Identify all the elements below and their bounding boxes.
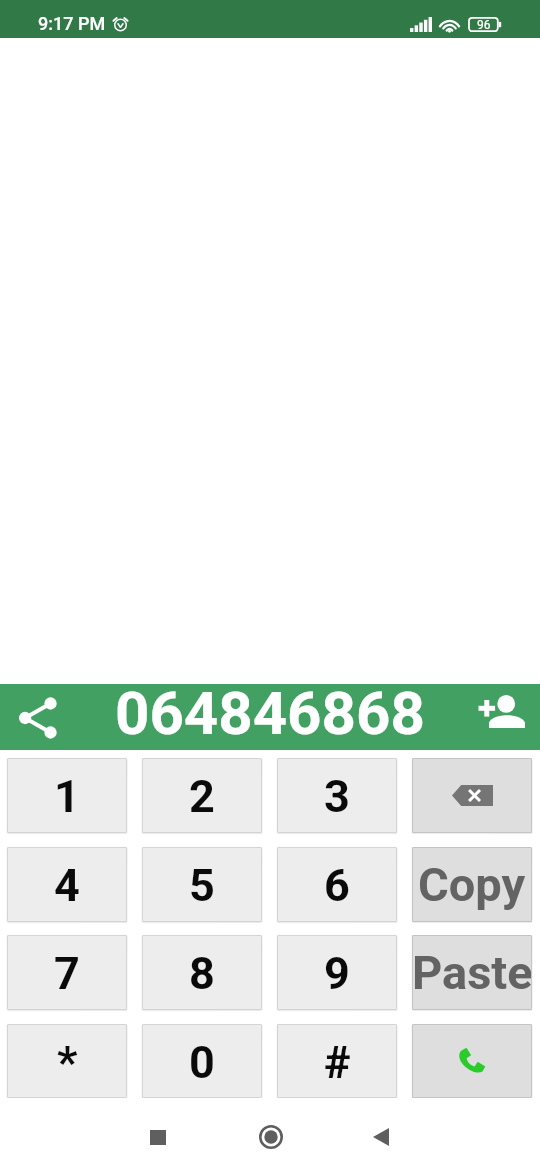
staticText: Paste xyxy=(412,945,532,1000)
staticText: 0 xyxy=(189,1036,215,1089)
button[interactable]: 6 xyxy=(277,847,397,922)
staticText: # xyxy=(324,1036,351,1089)
button[interactable]: 2 xyxy=(142,758,262,833)
button[interactable]: Add to contacts xyxy=(460,684,540,750)
staticText: 064846868 xyxy=(115,678,425,744)
staticText: 4 xyxy=(54,859,80,912)
staticText: 7 xyxy=(54,947,80,1000)
staticText: 9 xyxy=(324,947,350,1000)
staticText: 3 xyxy=(324,770,350,823)
button[interactable]: Paste xyxy=(412,935,532,1010)
button[interactable]: Copy xyxy=(412,847,532,922)
button[interactable]: 5 xyxy=(142,847,262,922)
button[interactable]: Call xyxy=(412,1024,532,1098)
staticText: 6 xyxy=(324,859,350,912)
other: Delete xyxy=(452,785,493,806)
button[interactable]: 8 xyxy=(142,935,262,1010)
staticText: * xyxy=(57,1036,78,1089)
button[interactable]: 4 xyxy=(7,847,127,922)
button[interactable]: Delete xyxy=(412,758,532,833)
button[interactable]: Back xyxy=(335,1105,426,1169)
button[interactable]: Home xyxy=(224,1105,317,1169)
staticText: 2 xyxy=(189,770,215,823)
staticText: 9:17 PM xyxy=(38,13,106,34)
staticText: 8 xyxy=(189,947,215,1000)
button[interactable]: 9 xyxy=(277,935,397,1010)
button[interactable]: Share xyxy=(0,684,80,750)
button[interactable]: 0 xyxy=(142,1024,262,1098)
staticText: Copy xyxy=(418,857,526,912)
other: Call xyxy=(455,1044,489,1078)
staticText: 5 xyxy=(189,859,215,912)
button[interactable]: # xyxy=(277,1024,397,1098)
staticText: 96 xyxy=(477,18,491,32)
button[interactable]: 7 xyxy=(7,935,127,1010)
button[interactable]: 1 xyxy=(7,758,127,833)
button[interactable]: 3 xyxy=(277,758,397,833)
staticText: 1 xyxy=(54,770,80,823)
button[interactable]: Recent apps xyxy=(112,1105,204,1169)
button[interactable]: * xyxy=(7,1024,127,1098)
